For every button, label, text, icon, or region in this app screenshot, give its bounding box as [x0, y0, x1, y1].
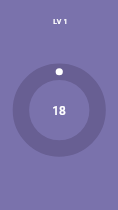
staticText: LV 1 [53, 18, 68, 26]
button[interactable]: Level progress 18 [12, 64, 105, 157]
staticText: 18 [52, 104, 66, 118]
button[interactable]: LV 1 [49, 15, 72, 29]
